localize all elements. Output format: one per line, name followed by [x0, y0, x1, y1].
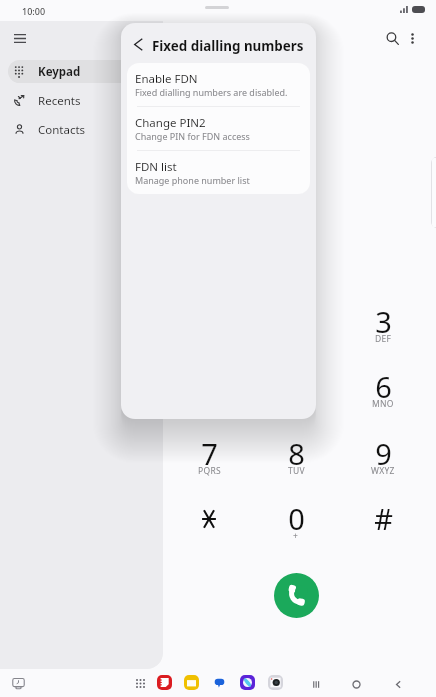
button[interactable]: Keypad — [8, 60, 154, 83]
staticText: Change PIN2 — [135, 115, 206, 131]
button[interactable]: Apps — [130, 673, 150, 693]
staticText: 3 — [375, 302, 392, 341]
button[interactable]: # — [347, 493, 419, 549]
staticText: 9 — [375, 434, 392, 473]
button[interactable]: Open navigation menu — [5, 23, 35, 53]
staticText: TUV — [288, 465, 305, 477]
button[interactable]: 6 — [347, 361, 419, 417]
staticText: Enable FDN — [135, 71, 198, 87]
button[interactable]: 8 — [260, 428, 332, 484]
staticText: Recents — [38, 93, 81, 109]
staticText: + — [293, 530, 299, 542]
staticText: DEF — [375, 333, 392, 345]
staticText: FDN list — [135, 159, 177, 175]
staticText: 6 — [375, 367, 392, 406]
staticText: 8 — [288, 434, 305, 473]
button[interactable]: My Files — [181, 672, 201, 692]
staticText: PQRS — [198, 465, 221, 477]
staticText: 7 — [201, 434, 218, 473]
button[interactable]: Back — [386, 672, 410, 696]
button[interactable]: Back — [124, 32, 152, 56]
button[interactable]: More options — [398, 24, 426, 52]
staticText: # — [374, 499, 393, 538]
staticText: Change PIN for FDN access — [135, 130, 250, 142]
button[interactable]: 0 — [260, 493, 332, 549]
button[interactable]: Samsung Notes — [154, 672, 174, 692]
button[interactable]: 3 — [347, 296, 419, 352]
staticText: MNO — [372, 398, 394, 410]
button[interactable]: Enable FDN — [127, 63, 310, 106]
button[interactable]: 9 — [347, 428, 419, 484]
button[interactable]: Internet — [237, 672, 257, 692]
button[interactable]: Recents — [8, 89, 154, 112]
staticText: 10:00 — [22, 5, 46, 17]
button[interactable]: Change PIN2 — [127, 107, 310, 150]
button[interactable]: Home — [344, 672, 368, 696]
button[interactable]: Screen timeout — [8, 673, 28, 693]
staticText: Contacts — [38, 122, 86, 138]
staticText: 0 — [288, 499, 305, 538]
button[interactable]: 2 — [260, 296, 332, 352]
button[interactable]: Recent apps — [304, 672, 328, 696]
staticText: Fixed dialling numbers are disabled. — [135, 86, 288, 98]
button[interactable]: 7 — [173, 428, 245, 484]
staticText: Keypad — [38, 64, 81, 80]
button[interactable]: Call — [274, 573, 319, 618]
staticText: Fixed dialling numbers — [152, 37, 304, 55]
button[interactable]: 5 — [260, 361, 332, 417]
staticText: Manage phone number list — [135, 174, 250, 186]
button[interactable]: Camera — [265, 672, 285, 692]
staticText: WXYZ — [371, 465, 395, 477]
button[interactable]: Messages — [209, 672, 229, 692]
button[interactable]: FDN list — [127, 151, 310, 194]
button[interactable]: Search — [378, 24, 406, 52]
button[interactable] — [173, 493, 245, 549]
button[interactable]: Contacts — [8, 118, 154, 141]
